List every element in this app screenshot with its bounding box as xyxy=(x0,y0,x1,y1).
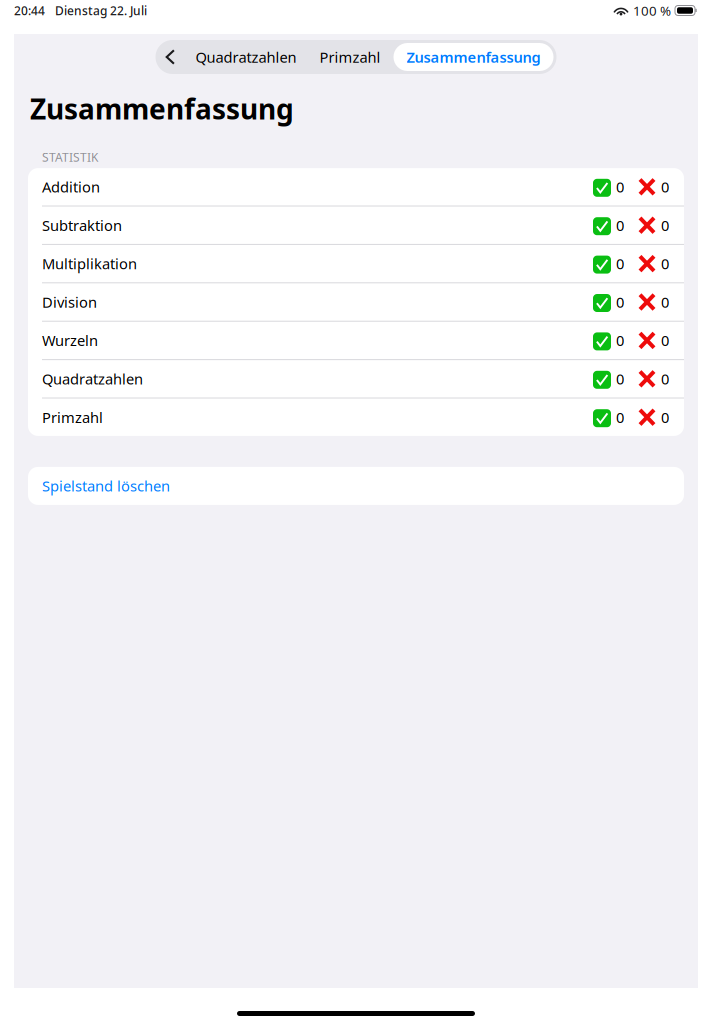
button[interactable]: Multiplikation xyxy=(28,245,684,282)
staticText: 100 % xyxy=(633,2,671,19)
staticText: 0 xyxy=(661,177,669,197)
staticText: 0 xyxy=(616,292,624,312)
button[interactable]: Zusammenfassung xyxy=(393,43,553,71)
staticText: 0 xyxy=(661,331,669,350)
staticText: Quadratzahlen xyxy=(195,47,296,67)
staticText: Quadratzahlen xyxy=(42,369,143,389)
staticText: 0 xyxy=(661,254,669,273)
staticText: 0 xyxy=(616,407,624,427)
button[interactable]: Spielstand löschen xyxy=(28,467,684,505)
button[interactable]: Primzahl xyxy=(28,398,684,436)
staticText: 0 xyxy=(661,369,669,389)
staticText: Spielstand löschen xyxy=(42,476,170,496)
button[interactable]: Primzahl xyxy=(306,42,393,72)
staticText: 0 xyxy=(616,331,624,350)
staticText: Zusammenfassung xyxy=(406,47,540,67)
staticText: 0 xyxy=(616,215,624,235)
staticText: Zusammenfassung xyxy=(30,90,294,127)
button[interactable]: Quadratzahlen xyxy=(184,42,306,72)
button[interactable]: Subtraktion xyxy=(28,206,684,244)
button[interactable]: Division xyxy=(28,283,684,321)
staticText: Primzahl xyxy=(42,407,103,427)
staticText: 0 xyxy=(661,407,669,427)
staticText: STATISTIK xyxy=(42,149,98,165)
staticText: Division xyxy=(42,292,97,312)
staticText: 0 xyxy=(661,292,669,312)
button[interactable]: Zurück xyxy=(155,40,184,74)
staticText: Dienstag 22. Juli xyxy=(55,2,147,18)
staticText: Addition xyxy=(42,177,100,197)
staticText: Primzahl xyxy=(319,47,380,67)
staticText: 0 xyxy=(661,215,669,235)
button[interactable]: Wurzeln xyxy=(28,322,684,359)
button[interactable]: Addition xyxy=(28,168,684,205)
staticText: Wurzeln xyxy=(42,331,98,350)
button[interactable]: Quadratzahlen xyxy=(28,360,684,397)
staticText: 0 xyxy=(616,177,624,197)
staticText: 20:44 xyxy=(14,2,45,18)
staticText: 0 xyxy=(616,254,624,273)
staticText: Multiplikation xyxy=(42,254,137,273)
staticText: Subtraktion xyxy=(42,215,122,235)
staticText: 0 xyxy=(616,369,624,389)
